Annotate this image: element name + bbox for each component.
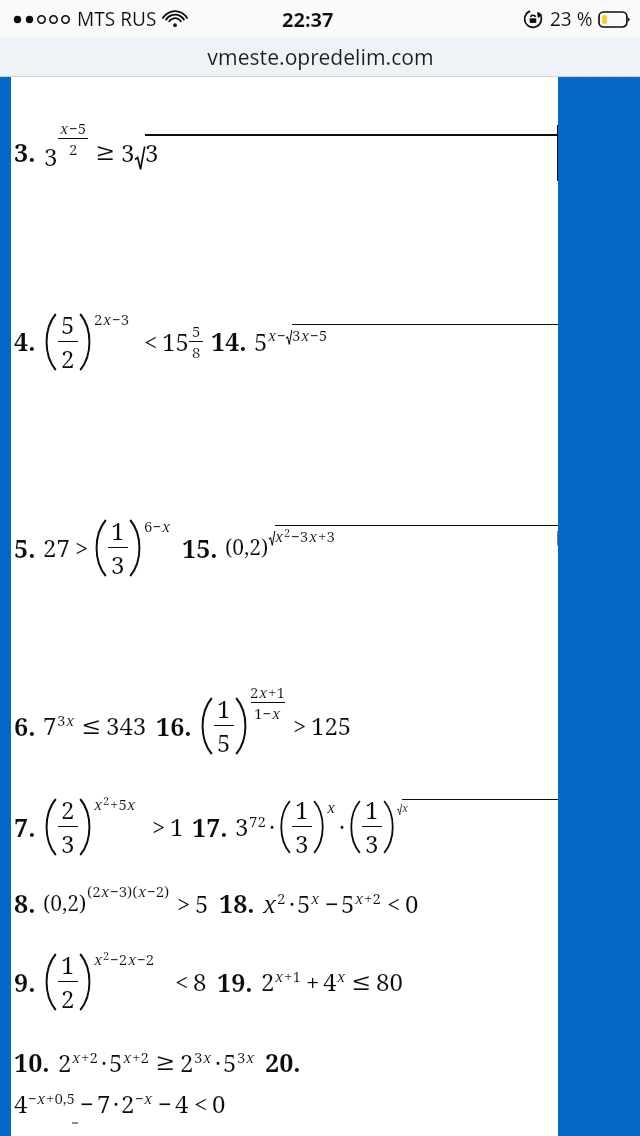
staticText: x	[337, 966, 346, 986]
staticText: 4	[323, 965, 337, 998]
staticText: ·	[269, 810, 275, 843]
staticText: 80	[376, 965, 403, 998]
staticText: 2	[58, 1046, 72, 1079]
staticText: 7.	[14, 810, 36, 844]
staticText: 0	[405, 887, 419, 920]
staticText: −	[135, 1088, 144, 1108]
staticText: −3	[291, 526, 309, 546]
staticText: 7	[97, 1087, 111, 1120]
staticText: x	[259, 682, 268, 702]
staticText: 2	[277, 888, 286, 908]
staticText: x	[162, 516, 171, 536]
staticText: 8	[193, 965, 207, 998]
staticText: 6−	[144, 516, 162, 536]
staticText: 5	[217, 726, 231, 759]
staticText: >	[293, 709, 307, 742]
staticText: −5	[69, 118, 87, 138]
staticText: 3	[292, 325, 301, 345]
staticText: +2	[132, 1047, 149, 1067]
staticText: −5	[310, 325, 328, 345]
staticText: 22:37	[282, 6, 334, 33]
staticText: 5	[223, 1046, 237, 1079]
staticText: 8	[192, 342, 201, 362]
staticText: <	[194, 1087, 208, 1120]
staticText: 1	[111, 514, 125, 547]
staticText: −	[325, 887, 339, 920]
staticText: x	[72, 1047, 81, 1067]
staticText: <	[175, 965, 189, 998]
staticText: 2	[250, 682, 259, 702]
staticText: x	[103, 309, 112, 329]
staticText: 3	[295, 827, 309, 860]
staticText: 3	[365, 827, 379, 860]
staticText: −2	[137, 949, 155, 969]
staticText: x	[272, 703, 281, 723]
staticText: x	[66, 710, 75, 730]
staticText: ·	[101, 1046, 107, 1079]
staticText: x	[127, 794, 136, 814]
staticText: x	[123, 1047, 132, 1067]
staticText: 5	[61, 308, 75, 341]
staticText: 3	[121, 136, 135, 169]
staticText: 18.	[219, 886, 255, 920]
staticText: +1	[268, 682, 285, 702]
staticText: ≤	[351, 968, 372, 996]
staticText: 17.	[192, 810, 228, 844]
staticText: x	[402, 800, 409, 815]
staticText: 2	[180, 1046, 194, 1079]
staticText: ≥	[95, 138, 116, 166]
staticText: 4	[14, 1087, 28, 1120]
staticText: x	[355, 888, 364, 908]
staticText: ·	[113, 1087, 119, 1120]
staticText: 1	[295, 793, 309, 826]
staticText: 5	[192, 321, 201, 341]
staticText: x	[301, 325, 310, 345]
staticText: x	[246, 1047, 255, 1067]
staticText: −	[277, 325, 286, 345]
staticText: 3	[111, 548, 125, 581]
staticText: 2	[94, 309, 103, 329]
staticText: 343	[106, 709, 147, 742]
staticText: +3	[318, 526, 335, 546]
button[interactable]: 3.	[0, 77, 558, 1136]
staticText: x	[101, 881, 110, 901]
staticText: x	[309, 526, 318, 546]
staticText: x	[138, 881, 147, 901]
staticText: 6.	[14, 709, 36, 743]
staticText: 3	[145, 136, 159, 169]
staticText: 16.	[156, 709, 192, 743]
staticText: −3)(	[110, 881, 138, 901]
staticText: x	[144, 1088, 153, 1108]
staticText: 2	[284, 525, 291, 540]
staticText: 15.	[182, 531, 218, 565]
staticText: −2	[110, 949, 128, 969]
staticText: 0	[212, 1087, 226, 1120]
staticText: 5	[341, 887, 355, 920]
staticText: ·	[215, 1046, 221, 1079]
staticText: ·	[339, 810, 345, 843]
staticText: 23 %	[550, 6, 593, 32]
staticText: 19.	[217, 965, 253, 999]
staticText: 2	[61, 982, 75, 1015]
staticText: ·	[289, 887, 295, 920]
staticText: +1	[284, 966, 301, 986]
staticText: 27	[43, 531, 70, 564]
staticText: 5	[254, 325, 268, 358]
staticText: +	[306, 965, 320, 998]
staticText: 5	[297, 887, 311, 920]
staticText: x	[94, 949, 103, 969]
staticText: >	[75, 531, 89, 564]
staticText: 9.	[14, 965, 36, 999]
staticText: 20.	[265, 1045, 301, 1079]
staticText: >	[152, 810, 166, 843]
staticText: 14.	[211, 324, 247, 358]
staticText: 5	[109, 1046, 123, 1079]
staticText: x	[275, 966, 284, 986]
staticText: 5.	[14, 531, 36, 565]
staticText: 3	[57, 710, 66, 730]
staticText: 125	[311, 709, 352, 742]
staticText: (2	[87, 881, 101, 901]
staticText: +2	[81, 1047, 98, 1067]
staticText: +5	[110, 794, 127, 814]
button[interactable]: vmeste.opredelim.com	[0, 38, 640, 76]
